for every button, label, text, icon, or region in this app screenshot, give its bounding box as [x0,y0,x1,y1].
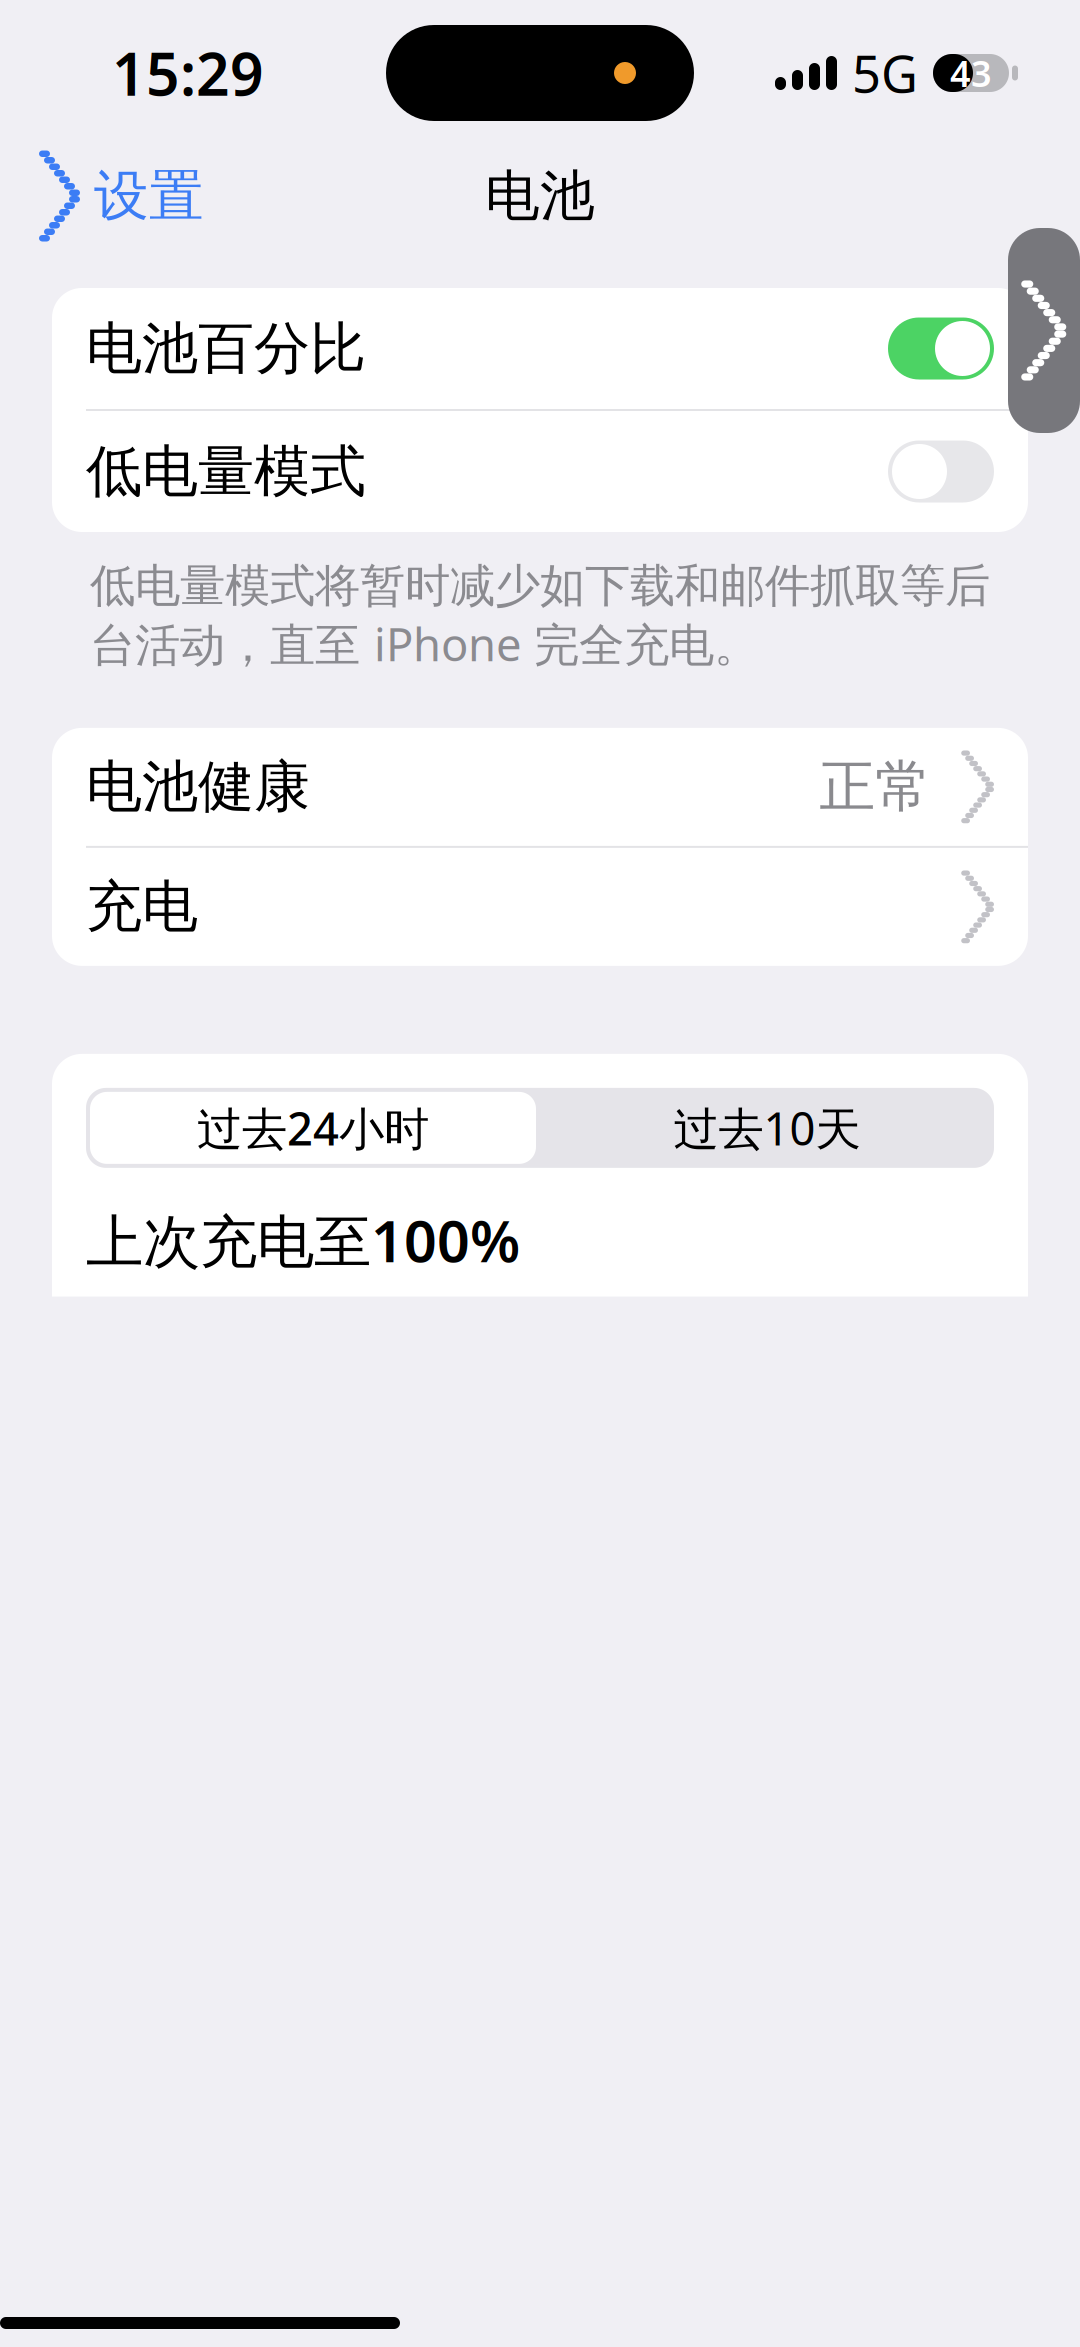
staticText: 电池 [485,162,595,229]
staticText: 上次充电至100% [86,1202,520,1278]
staticText: 43 [950,49,992,97]
staticText: 充电 [86,872,198,941]
staticText: 15:29 [112,34,264,112]
button[interactable]: 低电量模式 [52,411,1028,532]
staticText: 低电量模式将暂时减少如下载和邮件抓取等后台活动，直至 iPhone 完全充电。 [90,558,990,674]
button[interactable]: 充电 [52,848,1028,966]
button[interactable]: 电池健康 [52,728,1028,846]
button[interactable]: 设置 [0,140,204,251]
staticText: 电池健康 [86,752,310,821]
staticText: 过去10天 [673,1098,860,1158]
staticText: 低电量模式 [86,437,366,506]
staticText: 正常 [819,752,931,821]
button[interactable]: 返回 [1008,228,1080,433]
button[interactable]: 过去24小时 [86,1088,540,1168]
staticText: 06:42 [86,1286,207,1348]
staticText: 5G [852,39,918,107]
staticText: 设置 [94,162,204,229]
button[interactable]: 过去10天 [540,1088,994,1168]
staticText: 过去24小时 [197,1098,429,1158]
button[interactable]: 电池百分比 [52,288,1028,409]
staticText: 电池百分比 [86,314,366,383]
